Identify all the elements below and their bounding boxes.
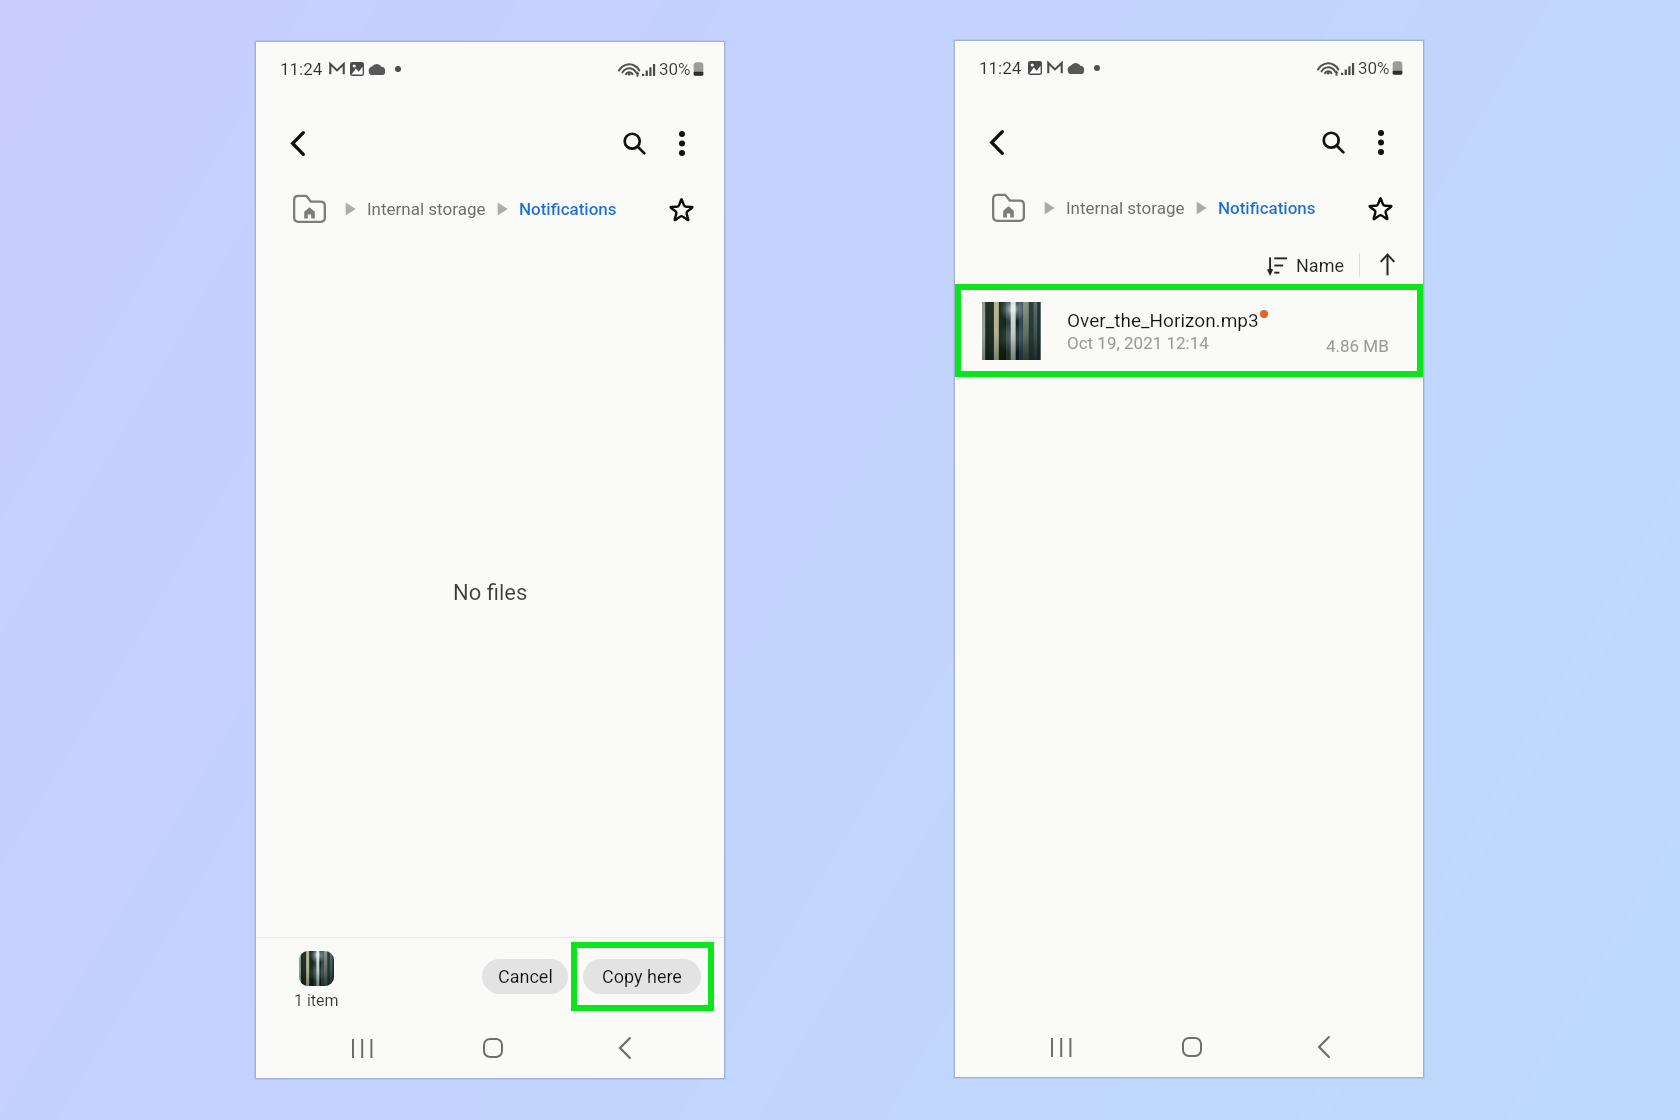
button[interactable]: Recent apps — [340, 1026, 384, 1070]
button[interactable]: Add to favourites — [1362, 190, 1398, 226]
button[interactable]: Over_the_Horizon.mp3 — [955, 284, 1423, 377]
button[interactable]: Back — [1302, 1025, 1346, 1069]
button[interactable]: Notifications — [519, 199, 617, 219]
button[interactable]: Search — [1309, 120, 1353, 164]
staticText: Cancel — [498, 966, 553, 987]
button[interactable]: Notifications — [1218, 198, 1316, 218]
staticText: Internal storage — [367, 199, 486, 219]
staticText: Name — [1296, 255, 1344, 276]
button[interactable]: More options — [660, 121, 704, 165]
button[interactable]: Home — [471, 1026, 515, 1070]
button[interactable]: Name — [1268, 255, 1344, 276]
staticText: Copy here — [602, 966, 682, 987]
staticText: 11:24 — [979, 58, 1022, 78]
button[interactable]: Home — [1170, 1025, 1214, 1069]
button[interactable]: Add to favourites — [663, 191, 699, 227]
button[interactable]: Navigate up — [975, 120, 1019, 164]
staticText: 30% — [1358, 58, 1390, 78]
button[interactable]: Back — [603, 1026, 647, 1070]
staticText: Notifications — [1218, 198, 1316, 218]
button[interactable]: Internal storage — [367, 199, 486, 219]
button[interactable]: Internal storage — [1066, 198, 1185, 218]
staticText: Oct 19, 2021 12:14 — [1067, 333, 1209, 353]
staticText: 4.86 MB — [1326, 336, 1389, 356]
button[interactable]: Search — [610, 121, 654, 165]
button[interactable]: Selected item — [294, 951, 339, 1010]
staticText: 30% — [659, 59, 691, 79]
staticText: Over_the_Horizon.mp3 — [1067, 309, 1259, 331]
button[interactable]: Copy here — [583, 959, 701, 994]
staticText: Internal storage — [1066, 198, 1185, 218]
button[interactable]: Recent apps — [1039, 1025, 1083, 1069]
staticText: 1 item — [294, 991, 339, 1010]
staticText: Notifications — [519, 199, 617, 219]
button[interactable]: Internal storage root folder — [292, 194, 326, 224]
staticText: No files — [453, 580, 528, 606]
button[interactable]: Sort ascending — [1374, 252, 1400, 278]
button[interactable]: Internal storage root folder — [991, 193, 1025, 223]
button[interactable]: More options — [1359, 120, 1403, 164]
button[interactable]: Navigate up — [276, 121, 320, 165]
staticText: 11:24 — [280, 59, 323, 79]
button[interactable]: Cancel — [482, 959, 568, 994]
